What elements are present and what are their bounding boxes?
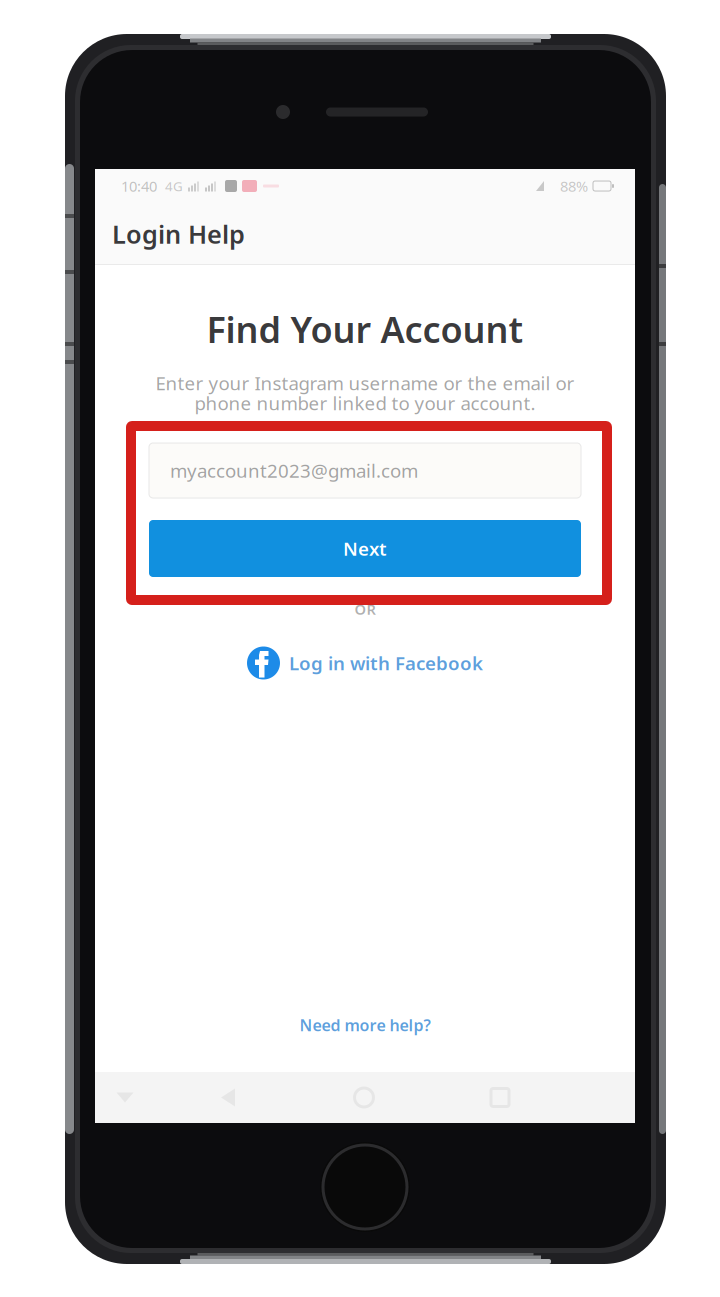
staticText: 88%: [560, 176, 588, 196]
button[interactable]: Hide keyboard: [93, 1072, 157, 1123]
staticText: Enter your Instagram username or the ema…: [155, 371, 574, 395]
staticText: 10:40: [121, 176, 157, 196]
button[interactable]: Need more help?: [299, 1011, 430, 1039]
button[interactable]: Log in with Facebook: [247, 645, 483, 681]
staticText: OR: [354, 599, 375, 619]
staticText: phone number linked to your account.: [194, 391, 535, 415]
staticText: Need more help?: [299, 1014, 430, 1036]
staticText: 4G: [165, 177, 183, 195]
staticText: Find Your Account: [206, 305, 523, 353]
staticText: Login Help: [112, 217, 245, 251]
button[interactable]: Recent apps: [468, 1072, 532, 1123]
staticText: Next: [343, 536, 387, 561]
staticText: Log in with Facebook: [289, 651, 483, 675]
button[interactable]: Next: [149, 520, 581, 577]
staticText: myaccount2023@gmail.com: [170, 458, 418, 483]
